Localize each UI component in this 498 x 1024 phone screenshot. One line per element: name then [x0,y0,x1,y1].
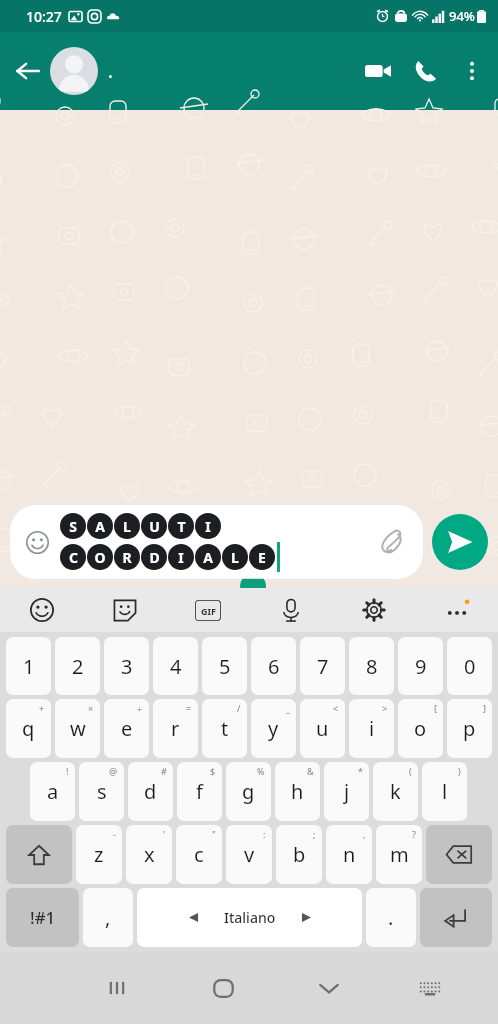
button[interactable]: . [366,888,416,947]
button[interactable]: d [128,762,173,821]
button[interactable]: l [422,762,467,821]
staticText: C [69,548,78,567]
staticText: w [70,715,86,742]
button[interactable]: 2 [55,637,100,695]
button[interactable]: e [104,699,149,758]
button[interactable]: 7 [300,637,345,695]
button[interactable]: n [326,825,372,884]
button[interactable]: Home [170,952,276,1024]
staticText: m [390,841,409,868]
staticText: x [144,841,155,868]
button[interactable]: Send [432,514,488,570]
button[interactable]: g [226,762,271,821]
button[interactable]: h [275,762,320,821]
button[interactable]: . [50,32,354,110]
button[interactable]: Voice call [402,47,450,95]
staticText: e [121,715,133,742]
button[interactable]: o [398,699,443,758]
staticText: q [22,715,35,742]
staticText: $ [210,765,216,777]
staticText: s [97,778,107,805]
button[interactable]: Emoji [10,505,423,579]
button[interactable]: 5 [202,637,247,695]
staticText: # [161,765,167,777]
staticText: : [263,828,266,840]
button[interactable]: 8 [349,637,394,695]
staticText: L [231,548,239,567]
button[interactable]: Symbols [6,888,79,947]
staticText: 5 [219,653,231,680]
staticText: D [149,548,160,567]
button[interactable]: 6 [251,637,296,695]
staticText: !#1 [30,906,56,929]
staticText: T [177,517,186,536]
button[interactable]: k [373,762,418,821]
button[interactable]: GIF [166,588,249,632]
button[interactable]: 0 [447,637,492,695]
staticText: ' [163,828,166,840]
button[interactable]: b [276,825,322,884]
staticText: O [94,548,106,567]
button[interactable]: v [226,825,272,884]
staticText: k [390,778,401,805]
button[interactable]: w [55,699,100,758]
button[interactable]: a [30,762,75,821]
button[interactable]: x [126,825,172,884]
button[interactable]: Back [6,49,50,93]
button[interactable]: p [447,699,492,758]
button[interactable]: r [153,699,198,758]
button[interactable]: y [251,699,296,758]
button[interactable]: Emoji [0,588,83,632]
button[interactable]: c [176,825,222,884]
staticText: < [333,702,339,714]
button[interactable]: z [76,825,122,884]
staticText: c [194,841,204,868]
staticText: 94% [449,7,475,25]
button[interactable]: Video call [354,47,402,95]
button[interactable]: q [6,699,51,758]
staticText: y [268,715,279,742]
staticText: g [242,778,255,805]
staticText: j [344,778,350,805]
button[interactable]: Stickers [83,588,166,632]
button[interactable]: Switch keyboard [382,952,477,1024]
button[interactable]: , [83,888,133,947]
button[interactable]: 1 [6,637,51,695]
staticText: d [144,778,157,805]
button[interactable]: t [202,699,247,758]
button[interactable]: m [376,825,422,884]
button[interactable]: f [177,762,222,821]
button[interactable]: j [324,762,369,821]
button[interactable]: Enter [420,888,492,947]
staticText: GIF [201,605,216,617]
button[interactable]: i [349,699,394,758]
staticText: v [244,841,255,868]
staticText: ( [409,765,412,777]
button[interactable]: 3 [104,637,149,695]
staticText: 1 [23,653,35,680]
button[interactable]: Hide keyboard [276,952,382,1024]
button[interactable]: Shift [6,825,72,884]
button[interactable]: Settings [332,588,415,632]
button[interactable]: More options [450,49,494,93]
staticText: ! [66,765,69,777]
button[interactable]: More [415,588,498,632]
button[interactable]: s [79,762,124,821]
button[interactable]: Backspace [426,825,492,884]
staticText: u [316,715,329,742]
button[interactable]: Emoji [18,523,56,561]
staticText: I [178,548,184,567]
staticText: 9 [415,653,427,680]
button[interactable]: 9 [398,637,443,695]
staticText: 4 [170,653,182,680]
button[interactable]: Recents [64,952,170,1024]
button[interactable]: 4 [153,637,198,695]
button[interactable]: Attach [373,523,411,561]
button[interactable]: Italiano [137,888,362,947]
staticText: h [291,778,304,805]
staticText: . [388,904,394,931]
button[interactable]: u [300,699,345,758]
staticText: * [358,765,363,777]
button[interactable]: Voice input [249,588,332,632]
staticText: 6 [268,653,280,680]
